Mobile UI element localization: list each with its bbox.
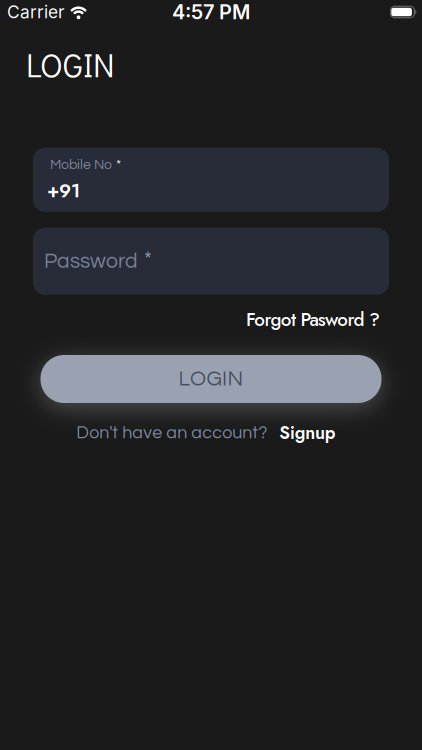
staticText: LOGIN [178, 368, 243, 390]
staticText: 4:57 PM [172, 0, 250, 24]
staticText: Password [44, 250, 138, 272]
button[interactable]: Mobile No [33, 148, 389, 212]
staticText: LOGIN [26, 43, 115, 86]
button[interactable]: Signup [279, 420, 336, 446]
staticText: Signup [279, 420, 336, 446]
staticText: Forgot Pasword ? [246, 306, 380, 333]
staticText: * [144, 248, 152, 270]
staticText: * [116, 157, 121, 172]
button[interactable]: Forgot Pasword ? [246, 306, 380, 333]
staticText: Mobile No [50, 157, 112, 172]
staticText: Don't have an account? [76, 424, 267, 442]
staticText: Carrier [7, 2, 65, 22]
staticText: +91 [47, 177, 80, 204]
button[interactable]: Password [33, 228, 389, 295]
button[interactable]: LOGIN [40, 355, 381, 403]
